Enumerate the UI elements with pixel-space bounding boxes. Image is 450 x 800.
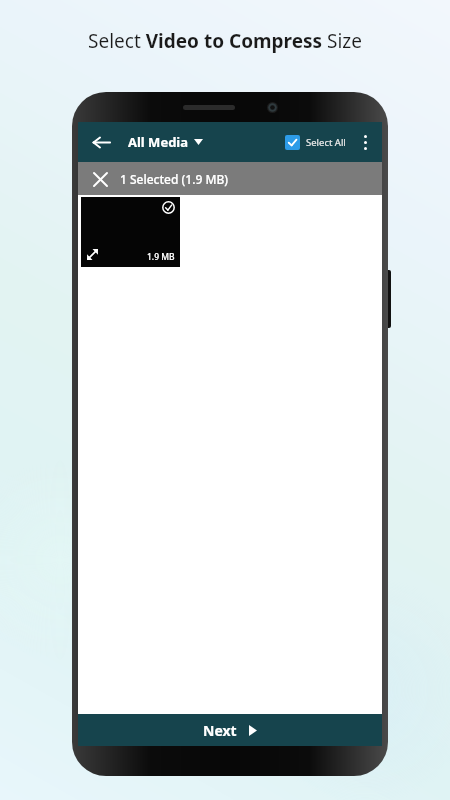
staticText: 1 Selected (1.9 MB) (120, 171, 229, 187)
button[interactable]: Clear selection (88, 167, 112, 191)
button[interactable]: Select All (283, 135, 348, 150)
button[interactable]: Expand preview (81, 197, 180, 267)
staticText: Select Video to Compress Size (88, 28, 362, 54)
button[interactable]: More options (356, 127, 374, 157)
staticText: Select All (306, 136, 346, 149)
other: Expand preview (86, 248, 99, 261)
button[interactable]: Back (86, 127, 116, 157)
button[interactable]: All Media (128, 133, 203, 151)
staticText: All Media (128, 133, 189, 151)
button[interactable]: Next (78, 714, 382, 746)
staticText: 1.9 MB (147, 251, 175, 263)
staticText: Next (203, 721, 237, 740)
